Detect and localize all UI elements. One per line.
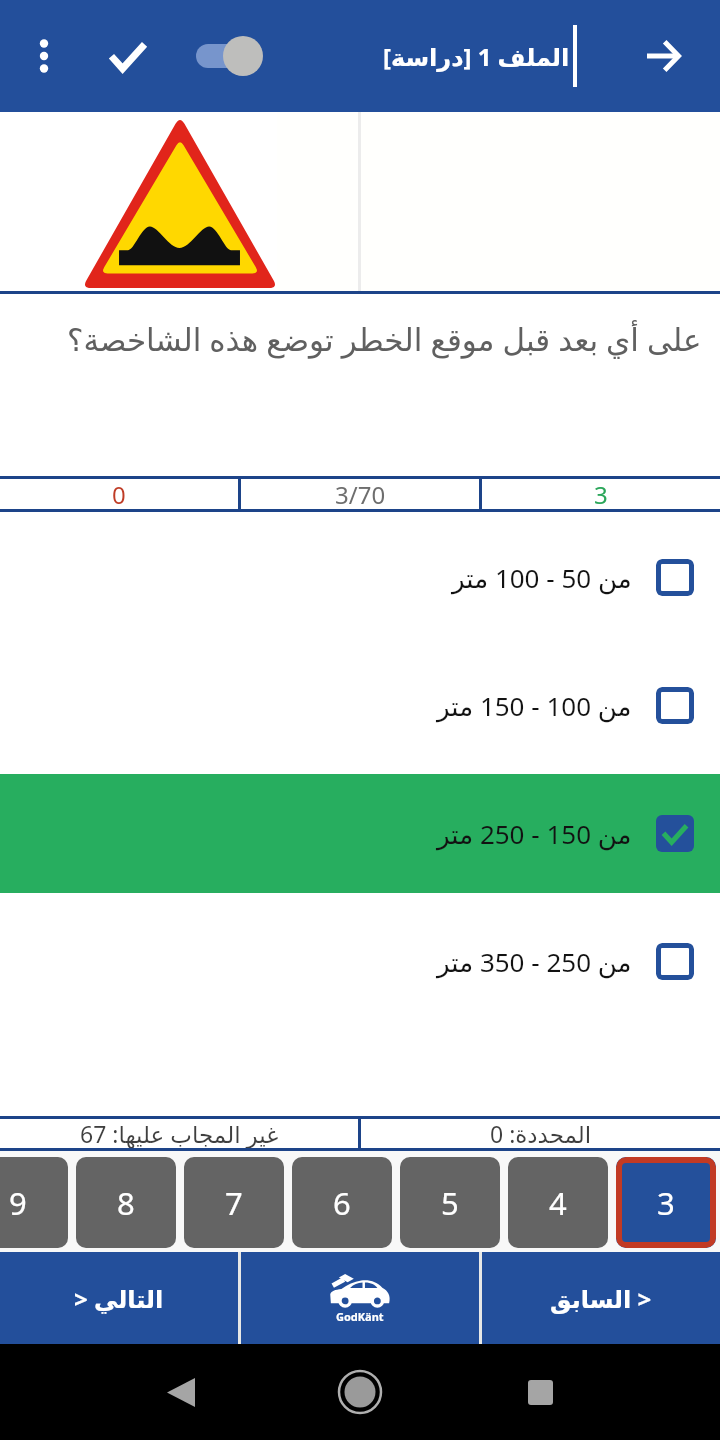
staticText: 3/70	[335, 478, 386, 511]
staticText: 0	[112, 478, 126, 511]
button[interactable]: Recent apps	[516, 1368, 564, 1416]
button[interactable]: Back	[157, 1368, 205, 1416]
button[interactable]: 4	[508, 1157, 608, 1248]
staticText: 8	[117, 1182, 135, 1224]
button[interactable]: More options	[16, 28, 72, 84]
button[interactable]: 9	[0, 1157, 68, 1248]
staticText: 3	[657, 1182, 675, 1224]
button[interactable]: من 50 - 100 متر	[0, 518, 720, 637]
staticText: من 100 - 150 متر	[437, 688, 632, 723]
button[interactable]: 3	[616, 1157, 716, 1248]
button[interactable]: Road sign: uneven road ahead	[0, 112, 277, 291]
button[interactable]: من 150 - 250 متر	[0, 774, 720, 893]
staticText: 4	[549, 1182, 567, 1224]
staticText: 7	[225, 1182, 243, 1224]
button[interactable]: 8	[76, 1157, 176, 1248]
staticText: 3	[594, 478, 608, 511]
button[interactable]: 7	[184, 1157, 284, 1248]
staticText: 6	[333, 1182, 351, 1224]
staticText: 5	[441, 1182, 459, 1224]
staticText: GodKänt	[336, 1309, 384, 1324]
button[interactable]: GodKant home	[241, 1252, 479, 1344]
staticText: > التالي	[74, 1282, 164, 1315]
staticText: الملف 1 [دراسة]	[383, 40, 570, 73]
button[interactable]: Home	[336, 1368, 384, 1416]
staticText: 9	[9, 1182, 27, 1224]
staticText: السابق >	[550, 1282, 652, 1315]
staticText: من 50 - 100 متر	[452, 560, 632, 595]
staticText: من 150 - 250 متر	[437, 816, 632, 851]
button[interactable]: 5	[400, 1157, 500, 1248]
button[interactable]: السابق >	[482, 1252, 720, 1344]
staticText: من 250 - 350 متر	[437, 944, 632, 979]
button[interactable]: Next question	[632, 24, 696, 88]
button[interactable]: Confirm	[96, 24, 160, 88]
staticText: على أي بعد قبل موقع الخطر توضع هذه الشاخ…	[67, 318, 702, 360]
staticText: المحددة: 0	[490, 1118, 592, 1149]
staticText: غير المجاب عليها: 67	[80, 1118, 279, 1149]
button[interactable]: من 250 - 350 متر	[0, 902, 720, 1021]
button[interactable]: Toggle setting	[190, 28, 270, 84]
button[interactable]: من 100 - 150 متر	[0, 646, 720, 765]
button[interactable]: > التالي	[0, 1252, 238, 1344]
button[interactable]: 6	[292, 1157, 392, 1248]
